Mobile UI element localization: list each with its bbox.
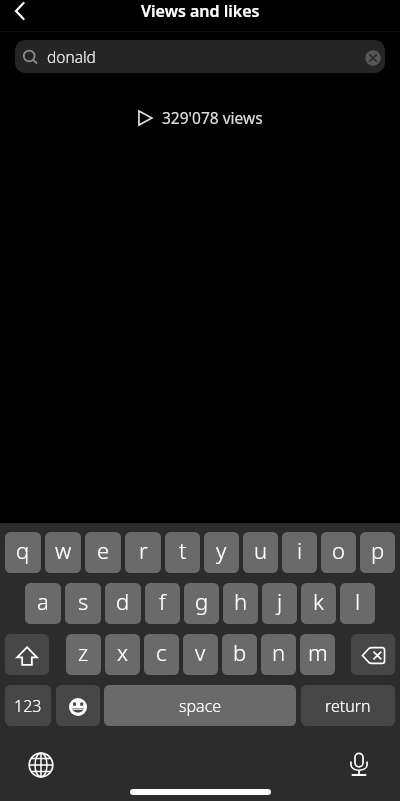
button[interactable]: Shift bbox=[5, 634, 49, 675]
button[interactable]: f bbox=[145, 583, 180, 624]
staticText: Views and likes bbox=[141, 0, 260, 22]
button[interactable]: j bbox=[262, 583, 297, 624]
button[interactable]: w bbox=[45, 532, 81, 573]
staticText: s bbox=[78, 586, 89, 616]
staticText: q bbox=[16, 535, 30, 565]
staticText: f bbox=[159, 586, 166, 616]
staticText: i bbox=[297, 535, 303, 565]
staticText: o bbox=[332, 535, 345, 565]
button[interactable]: n bbox=[261, 634, 296, 675]
staticText: j bbox=[277, 586, 283, 616]
button[interactable]: o bbox=[321, 532, 356, 573]
staticText: g bbox=[195, 586, 209, 616]
button[interactable]: x bbox=[105, 634, 140, 675]
button[interactable]: donald bbox=[15, 40, 385, 73]
staticText: m bbox=[308, 637, 328, 667]
staticText: h bbox=[234, 586, 248, 616]
button[interactable]: t bbox=[165, 532, 200, 573]
staticText: n bbox=[272, 637, 286, 667]
staticText: donald bbox=[47, 46, 96, 67]
button[interactable]: a bbox=[25, 583, 61, 624]
button[interactable]: Change keyboard language bbox=[23, 747, 59, 783]
button[interactable]: p bbox=[360, 532, 395, 573]
button[interactable]: m bbox=[300, 634, 335, 675]
staticText: c bbox=[156, 637, 167, 667]
button[interactable]: i bbox=[282, 532, 317, 573]
staticText: l bbox=[355, 586, 361, 616]
staticText: b bbox=[233, 637, 247, 667]
staticText: e bbox=[97, 535, 110, 565]
staticText: 123 bbox=[14, 695, 42, 717]
button[interactable]: b bbox=[222, 634, 257, 675]
button[interactable]: u bbox=[243, 532, 278, 573]
button[interactable]: k bbox=[301, 583, 336, 624]
staticText: x bbox=[117, 637, 129, 667]
staticText: y bbox=[216, 535, 227, 565]
button[interactable]: Emoji bbox=[56, 685, 100, 726]
button[interactable]: Back bbox=[5, 0, 35, 26]
button[interactable]: d bbox=[105, 583, 141, 624]
staticText: p bbox=[371, 535, 385, 565]
button[interactable]: q bbox=[5, 532, 41, 573]
button[interactable]: Clear text bbox=[362, 47, 384, 69]
staticText: w bbox=[55, 535, 72, 565]
staticText: z bbox=[78, 637, 89, 667]
button[interactable]: s bbox=[65, 583, 101, 624]
button[interactable]: e bbox=[85, 532, 121, 573]
button[interactable]: v bbox=[183, 634, 218, 675]
staticText: 329'078 views bbox=[162, 107, 263, 128]
button[interactable]: Backspace bbox=[351, 634, 395, 675]
staticText: d bbox=[116, 586, 130, 616]
staticText: u bbox=[254, 535, 268, 565]
staticText: k bbox=[313, 586, 324, 616]
staticText: t bbox=[179, 535, 187, 565]
button[interactable]: space bbox=[104, 685, 296, 726]
button[interactable]: 123 bbox=[5, 685, 51, 726]
staticText: r bbox=[139, 535, 148, 565]
staticText: return bbox=[325, 695, 371, 717]
staticText: a bbox=[37, 586, 49, 616]
staticText: v bbox=[195, 637, 206, 667]
button[interactable]: g bbox=[184, 583, 219, 624]
button[interactable]: r bbox=[125, 532, 161, 573]
button[interactable]: c bbox=[144, 634, 179, 675]
button[interactable]: z bbox=[66, 634, 101, 675]
button[interactable]: l bbox=[340, 583, 375, 624]
button[interactable]: Dictate bbox=[341, 746, 377, 782]
button[interactable]: return bbox=[301, 685, 395, 726]
button[interactable]: h bbox=[223, 583, 258, 624]
staticText: space bbox=[179, 695, 222, 717]
button[interactable]: y bbox=[204, 532, 239, 573]
